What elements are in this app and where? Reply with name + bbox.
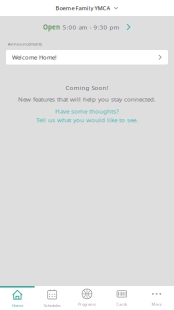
- staticText: Open: [43, 23, 60, 31]
- staticText: Have some thoughts?: [55, 107, 119, 115]
- button[interactable]: Home: [0, 286, 35, 310]
- staticText: Home: [12, 303, 23, 308]
- staticText: Coming Soon!: [65, 83, 108, 92]
- staticText: Cards: [116, 301, 127, 307]
- staticText: Boerne Family YMCA: [56, 4, 111, 12]
- button[interactable]: Welcome Home!: [6, 50, 168, 64]
- button[interactable]: Open: [0, 16, 174, 38]
- staticText: Programs: [78, 301, 96, 307]
- staticText: Tell us what you would like to see.: [36, 116, 138, 124]
- staticText: Welcome Home!: [12, 53, 57, 61]
- button[interactable]: More: [139, 286, 174, 310]
- button[interactable]: Boerne Family YMCA: [0, 0, 174, 16]
- staticText: Announcements: [8, 41, 42, 47]
- staticText: 5:00 am - 9:30 pm: [63, 23, 120, 31]
- button[interactable]: Cards: [104, 286, 139, 310]
- staticText: New features that will help you stay con…: [18, 95, 156, 103]
- button[interactable]: Programs: [70, 286, 104, 310]
- staticText: Schedules: [44, 303, 61, 308]
- button[interactable]: Schedules: [35, 286, 70, 310]
- staticText: More: [152, 301, 162, 307]
